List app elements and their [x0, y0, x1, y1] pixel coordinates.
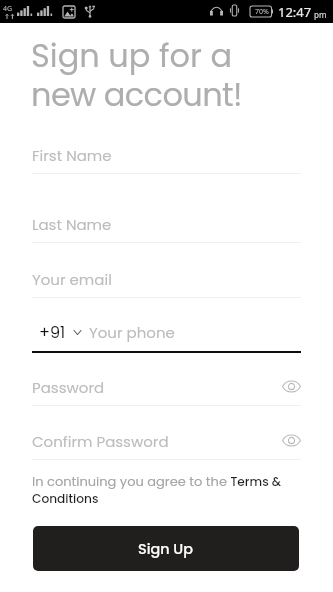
staticText: Sign Up — [138, 539, 194, 559]
staticText: 70% — [255, 7, 269, 17]
button[interactable]: Last Name — [0, 206, 333, 243]
staticText: new account! — [31, 72, 243, 117]
staticText: In continuing you agree to the Terms & C… — [32, 472, 301, 507]
button[interactable]: Password — [0, 369, 333, 406]
other: Show password — [282, 380, 301, 393]
staticText: 12:47 — [278, 3, 312, 21]
staticText: Password — [32, 377, 105, 398]
staticText: Your phone — [89, 322, 175, 343]
staticText: Confirm Password — [32, 431, 169, 452]
button[interactable]: In continuing you agree to the Terms & C… — [32, 472, 301, 507]
button[interactable]: Confirm Password — [0, 423, 333, 460]
button[interactable]: First Name — [0, 137, 333, 174]
other: Show password — [282, 434, 301, 447]
staticText: Last Name — [32, 214, 112, 235]
button[interactable]: Sign Up — [33, 526, 299, 571]
staticText: Your email — [32, 269, 112, 290]
button[interactable]: +91 — [0, 315, 333, 353]
staticText: 4G — [3, 4, 13, 14]
button[interactable]: Your email — [0, 261, 333, 298]
staticText: Sign up for a — [31, 33, 233, 78]
staticText: pm — [314, 9, 327, 20]
staticText: +91 — [39, 321, 66, 343]
staticText: First Name — [32, 145, 112, 166]
